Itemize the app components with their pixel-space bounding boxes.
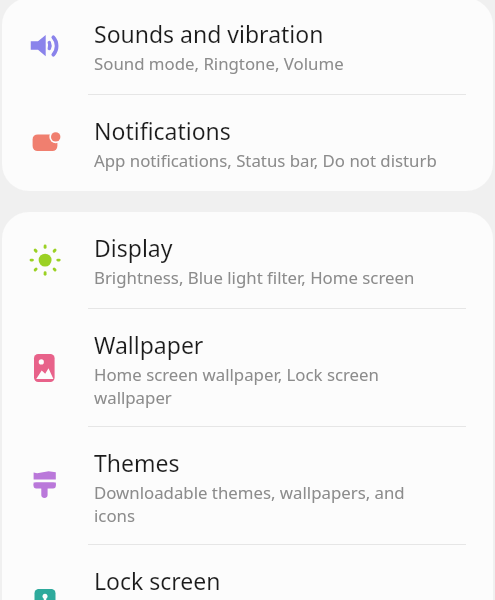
button[interactable]: Display bbox=[2, 212, 493, 308]
staticText: Sound mode, Ringtone, Volume bbox=[94, 52, 344, 75]
staticText: Brightness, Blue light filter, Home scre… bbox=[94, 266, 415, 289]
staticText: Display bbox=[94, 232, 173, 263]
staticText: Notifications bbox=[94, 115, 231, 146]
button[interactable]: Notifications bbox=[2, 95, 493, 191]
button[interactable]: Lock screen bbox=[2, 545, 493, 600]
staticText: Wallpaper bbox=[94, 329, 204, 360]
staticText: Lock screen bbox=[94, 565, 221, 596]
button[interactable]: Wallpaper bbox=[2, 309, 493, 426]
button[interactable]: Sounds and vibration bbox=[2, 0, 493, 94]
staticText: Home screen wallpaper, Lock screen wallp… bbox=[94, 363, 379, 409]
staticText: App notifications, Status bar, Do not di… bbox=[94, 149, 437, 172]
button[interactable]: Themes bbox=[2, 427, 493, 544]
staticText: Themes bbox=[94, 447, 180, 478]
staticText: Sounds and vibration bbox=[94, 18, 324, 49]
staticText: Downloadable themes, wallpapers, and ico… bbox=[94, 481, 405, 527]
